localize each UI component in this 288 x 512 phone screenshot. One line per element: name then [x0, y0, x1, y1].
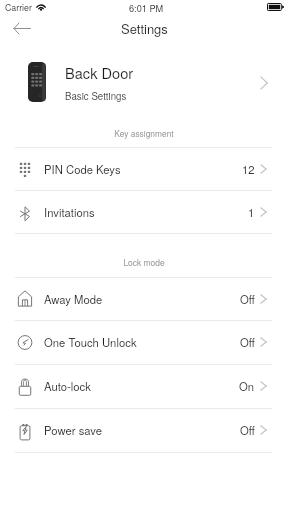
- staticText: Power save: [44, 422, 103, 438]
- button[interactable]: PIN Code Keys: [0, 147, 288, 190]
- staticText: Invitations: [44, 204, 95, 220]
- staticText: PIN Code Keys: [44, 161, 121, 177]
- button[interactable]: One Touch Unlock: [0, 320, 288, 363]
- staticText: Settings: [121, 19, 168, 38]
- button[interactable]: Back Door: [0, 50, 288, 114]
- staticText: Back Door: [65, 62, 134, 83]
- staticText: 1: [248, 204, 255, 220]
- staticText: Basic Settings: [65, 89, 127, 103]
- staticText: On: [239, 378, 255, 394]
- staticText: 12: [242, 161, 255, 177]
- button[interactable]: Auto-lock: [0, 364, 288, 407]
- staticText: Away Mode: [44, 291, 103, 307]
- staticText: Carrier: [5, 1, 32, 14]
- staticText: Auto-lock: [44, 378, 91, 394]
- staticText: One Touch Unlock: [44, 334, 137, 350]
- staticText: 6:01 PM: [129, 1, 164, 14]
- staticText: Lock mode: [123, 256, 165, 268]
- button[interactable]: Invitations: [0, 190, 288, 233]
- staticText: Off: [240, 334, 255, 350]
- button[interactable]: Back: [7, 14, 37, 42]
- staticText: Key assignment: [114, 127, 174, 139]
- staticText: Off: [240, 422, 255, 438]
- button[interactable]: Away Mode: [0, 277, 288, 320]
- staticText: Off: [240, 291, 255, 307]
- button[interactable]: Power save: [0, 408, 288, 451]
